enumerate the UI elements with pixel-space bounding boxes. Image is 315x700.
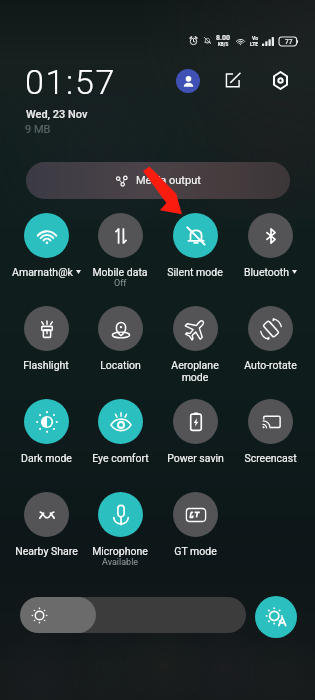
button[interactable]: Nearby Share [9, 488, 83, 573]
staticText: Power savin [167, 452, 224, 464]
staticText: 77 [285, 38, 293, 46]
staticText: Nearby Share [15, 545, 78, 557]
staticText: Mobile data [92, 266, 148, 278]
staticText: LTE [250, 41, 259, 47]
staticText: Silent mode [167, 266, 223, 278]
staticText: Amarnath@k [12, 266, 73, 278]
button[interactable]: Silent mode [158, 209, 232, 294]
staticText: Auto-rotate [244, 359, 297, 371]
button[interactable]: Dark mode [9, 395, 83, 480]
button[interactable]: Settings [268, 68, 292, 92]
button[interactable]: Mobile data [83, 209, 157, 294]
staticText: Flashlight [23, 359, 69, 371]
staticText: 8.00 [216, 34, 231, 42]
staticText: Wed, 23 Nov [26, 108, 88, 121]
staticText: Bluetooth [244, 266, 289, 278]
button[interactable]: Auto brightness [255, 596, 297, 638]
staticText: Microphone [92, 545, 148, 557]
button[interactable]: Media output [26, 162, 290, 199]
button[interactable]: GT mode [158, 488, 232, 573]
staticText: Screencast [244, 452, 297, 464]
button[interactable]: Eye comfort [83, 395, 157, 480]
staticText: Media output [136, 174, 201, 187]
button[interactable]: Location [83, 302, 157, 387]
button[interactable]: User account [176, 69, 200, 93]
staticText: KB/S [218, 42, 229, 47]
staticText: 01:57 [25, 62, 117, 102]
staticText: Off [114, 278, 127, 289]
staticText: Aeroplane mode [171, 359, 219, 383]
button[interactable]: Screencast [233, 395, 307, 480]
button[interactable]: Auto-rotate [233, 302, 307, 387]
staticText: Location [100, 359, 141, 371]
button[interactable]: Bluetooth [233, 209, 307, 294]
button[interactable]: Power savin [158, 395, 232, 480]
button[interactable]: Microphone [83, 488, 157, 573]
staticText: GT mode [174, 545, 217, 557]
button[interactable]: Edit quick settings [221, 68, 245, 92]
staticText: Vo [252, 35, 258, 41]
staticText: 9 MB [25, 123, 51, 136]
button[interactable]: Amarnath@k [9, 209, 83, 294]
button[interactable]: Brightness [20, 597, 246, 633]
button[interactable]: Flashlight [9, 302, 83, 387]
staticText: Eye comfort [92, 452, 149, 464]
staticText: Available [102, 557, 139, 568]
button[interactable]: Aeroplane mode [158, 302, 232, 387]
staticText: Dark mode [21, 452, 72, 464]
